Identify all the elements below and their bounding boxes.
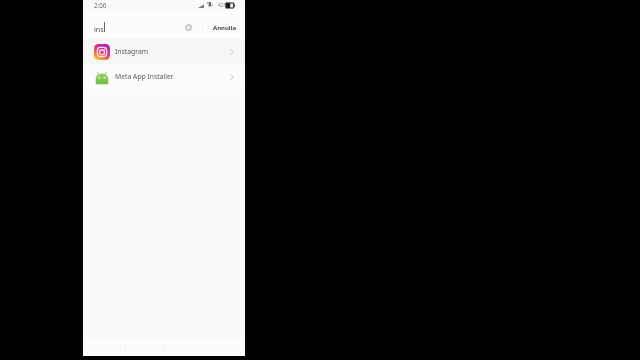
staticText: Annulla [213, 24, 237, 32]
button[interactable]: Clear search [180, 19, 196, 35]
staticText: Instagram [115, 47, 149, 56]
staticText: 42% [218, 2, 228, 9]
button[interactable]: Meta App Installer [83, 64, 245, 89]
button[interactable]: Back [192, 336, 216, 360]
staticText: 2:06 [94, 1, 107, 9]
button[interactable]: Recent apps [111, 336, 135, 360]
staticText: ins [94, 24, 104, 34]
staticText: Meta App Installer [115, 72, 174, 81]
button[interactable]: Home [152, 336, 176, 360]
button[interactable]: Instagram [83, 39, 245, 64]
button[interactable]: Annulla [212, 20, 238, 36]
